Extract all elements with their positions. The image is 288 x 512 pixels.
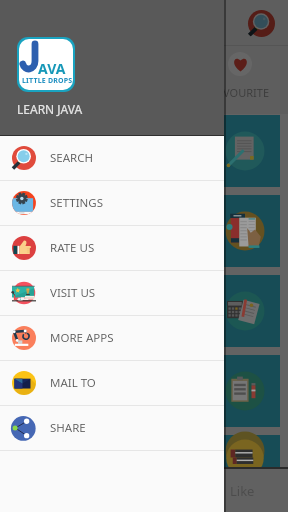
staticText: RATE US bbox=[50, 240, 95, 256]
button[interactable] bbox=[8, 115, 280, 187]
staticText: SETTINGS bbox=[50, 195, 104, 211]
staticText: CHAPTERS bbox=[21, 85, 75, 100]
staticText: SHARE bbox=[50, 420, 86, 436]
button[interactable] bbox=[8, 435, 280, 467]
staticText: Like bbox=[230, 482, 255, 500]
button[interactable] bbox=[8, 195, 280, 267]
staticText: LITTLE DROPS bbox=[22, 76, 73, 86]
button[interactable]: SEARCH bbox=[0, 136, 224, 180]
staticText: LEARN JAVA bbox=[17, 101, 83, 117]
staticText: MORE APPS bbox=[50, 330, 114, 346]
button[interactable]: Search bbox=[244, 6, 278, 40]
staticText: MAIL TO bbox=[50, 375, 96, 391]
staticText: SEARCH bbox=[50, 150, 93, 166]
button[interactable] bbox=[8, 275, 280, 347]
button[interactable]: RATE US bbox=[0, 226, 224, 270]
button[interactable]: CHAPTERS bbox=[0, 46, 96, 114]
button[interactable]: SHARE bbox=[0, 406, 224, 450]
button[interactable]: VISIT US bbox=[0, 271, 224, 315]
button[interactable] bbox=[8, 355, 280, 427]
staticText: VISIT US bbox=[50, 285, 96, 301]
button[interactable]: MORE APPS bbox=[0, 316, 224, 360]
button[interactable]: FAVOURITE bbox=[192, 46, 288, 114]
button[interactable]: MAIL TO bbox=[0, 361, 224, 405]
staticText: FAVOURITE bbox=[211, 85, 270, 100]
button[interactable]: SETTINGS bbox=[0, 181, 224, 225]
staticText: AVA bbox=[38, 59, 66, 78]
